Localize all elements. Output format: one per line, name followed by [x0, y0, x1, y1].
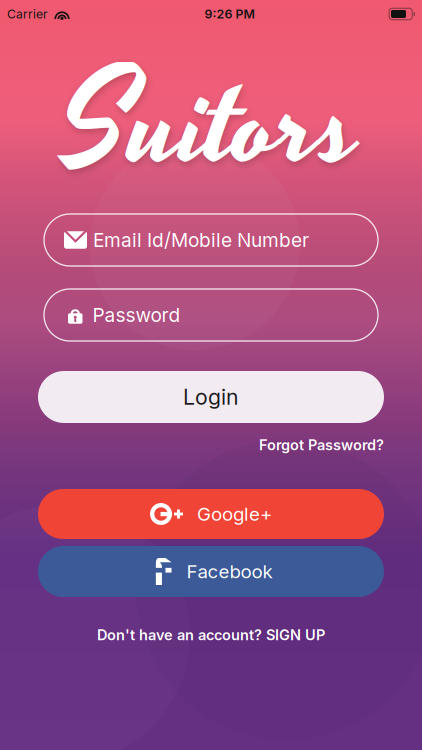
staticText: Password: [92, 303, 180, 327]
staticText: 9:26 PM: [205, 6, 255, 21]
button[interactable]: Google+: [38, 489, 384, 539]
button[interactable]: Password: [44, 289, 378, 341]
staticText: Carrier: [7, 7, 48, 21]
button[interactable]: Forgot Password?: [259, 436, 384, 454]
staticText: Don't have an account? SIGN UP: [97, 626, 325, 644]
staticText: Forgot Password?: [259, 436, 384, 454]
staticText: Facebook: [186, 560, 272, 583]
staticText: Suitors: [62, 35, 360, 221]
button[interactable]: Login: [38, 371, 384, 423]
staticText: Login: [183, 384, 239, 410]
button[interactable]: Email Id/Mobile Number: [44, 214, 378, 266]
button[interactable]: Facebook: [38, 546, 384, 597]
button[interactable]: Don't have an account? SIGN UP: [97, 626, 325, 644]
staticText: Google+: [197, 503, 272, 525]
staticText: Email Id/Mobile Number: [93, 228, 309, 252]
